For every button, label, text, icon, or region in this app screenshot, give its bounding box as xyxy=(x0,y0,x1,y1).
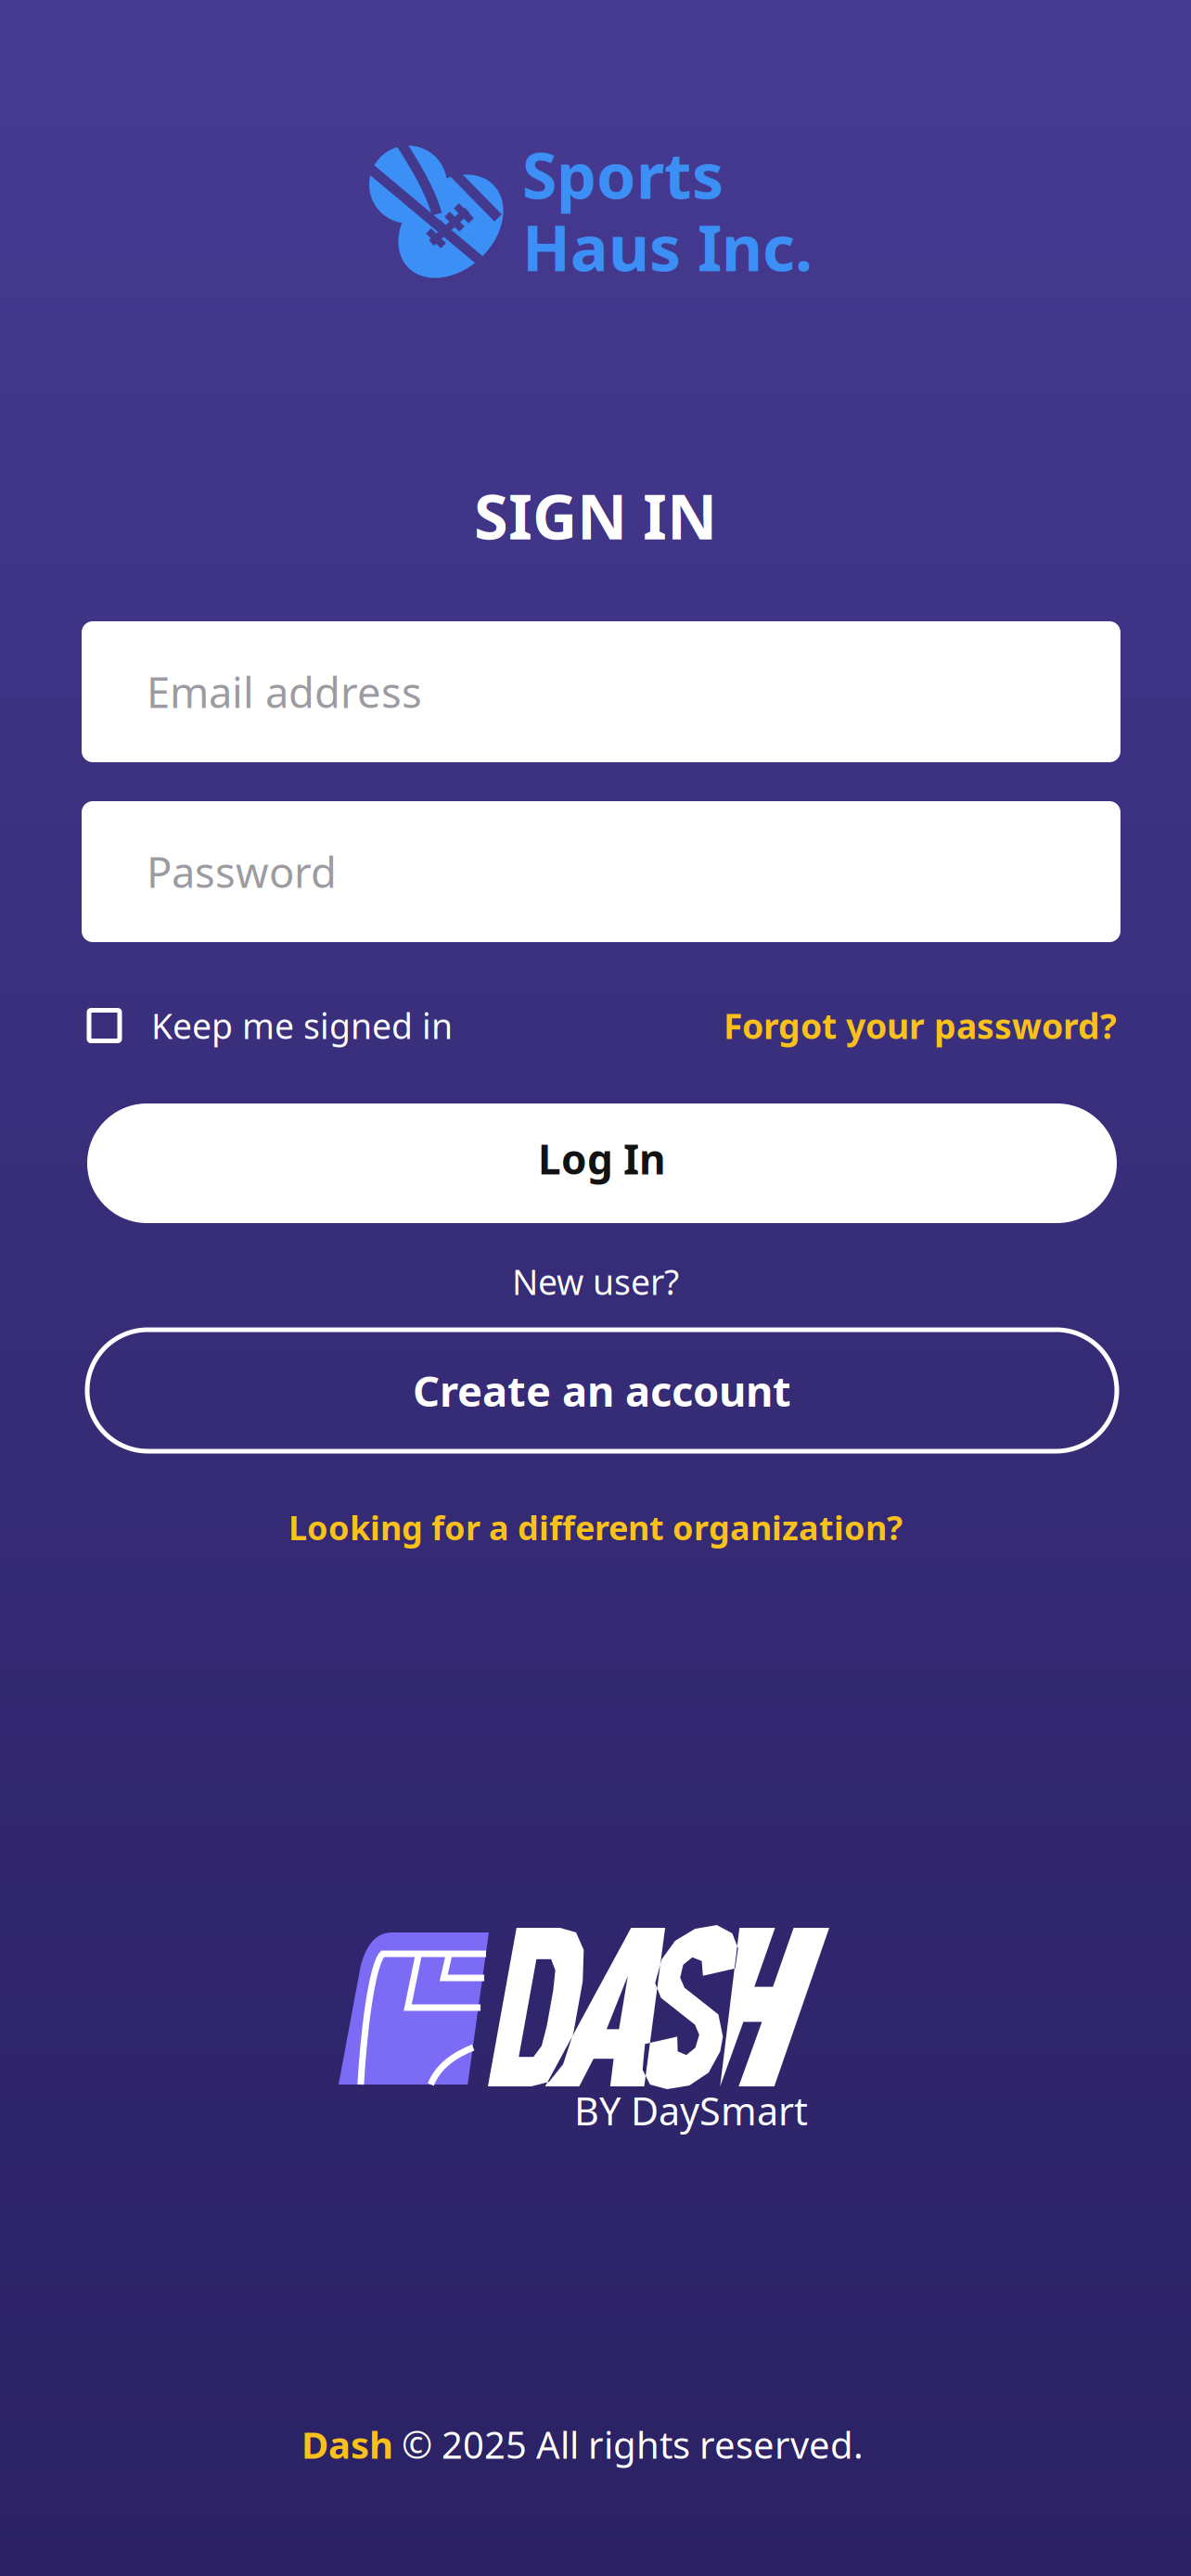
staticText: Password xyxy=(147,844,337,900)
button[interactable]: Keep me signed in xyxy=(89,997,488,1054)
staticText: New user? xyxy=(512,1259,679,1305)
staticText: Looking for a different organization? xyxy=(288,1505,903,1549)
button[interactable]: Log In xyxy=(87,1103,1117,1223)
button[interactable]: Forgot your password? xyxy=(681,997,1117,1054)
staticText: Email address xyxy=(147,664,422,720)
button[interactable]: Looking for a different organization? xyxy=(0,1505,1191,1549)
staticText: Sports xyxy=(522,132,724,216)
staticText: Forgot your password? xyxy=(724,1003,1117,1049)
staticText: Dash xyxy=(301,2420,393,2469)
staticText: SIGN IN xyxy=(474,474,717,557)
button[interactable]: Create an account xyxy=(87,1330,1117,1451)
staticText: © 2025 All rights reserved. xyxy=(402,2420,864,2469)
staticText: Haus Inc. xyxy=(522,205,813,288)
staticText: BY DaySmart xyxy=(574,2085,808,2136)
staticText: Keep me signed in xyxy=(151,1003,453,1049)
staticText: Create an account xyxy=(413,1363,791,1418)
staticText: Log In xyxy=(538,1132,666,1186)
